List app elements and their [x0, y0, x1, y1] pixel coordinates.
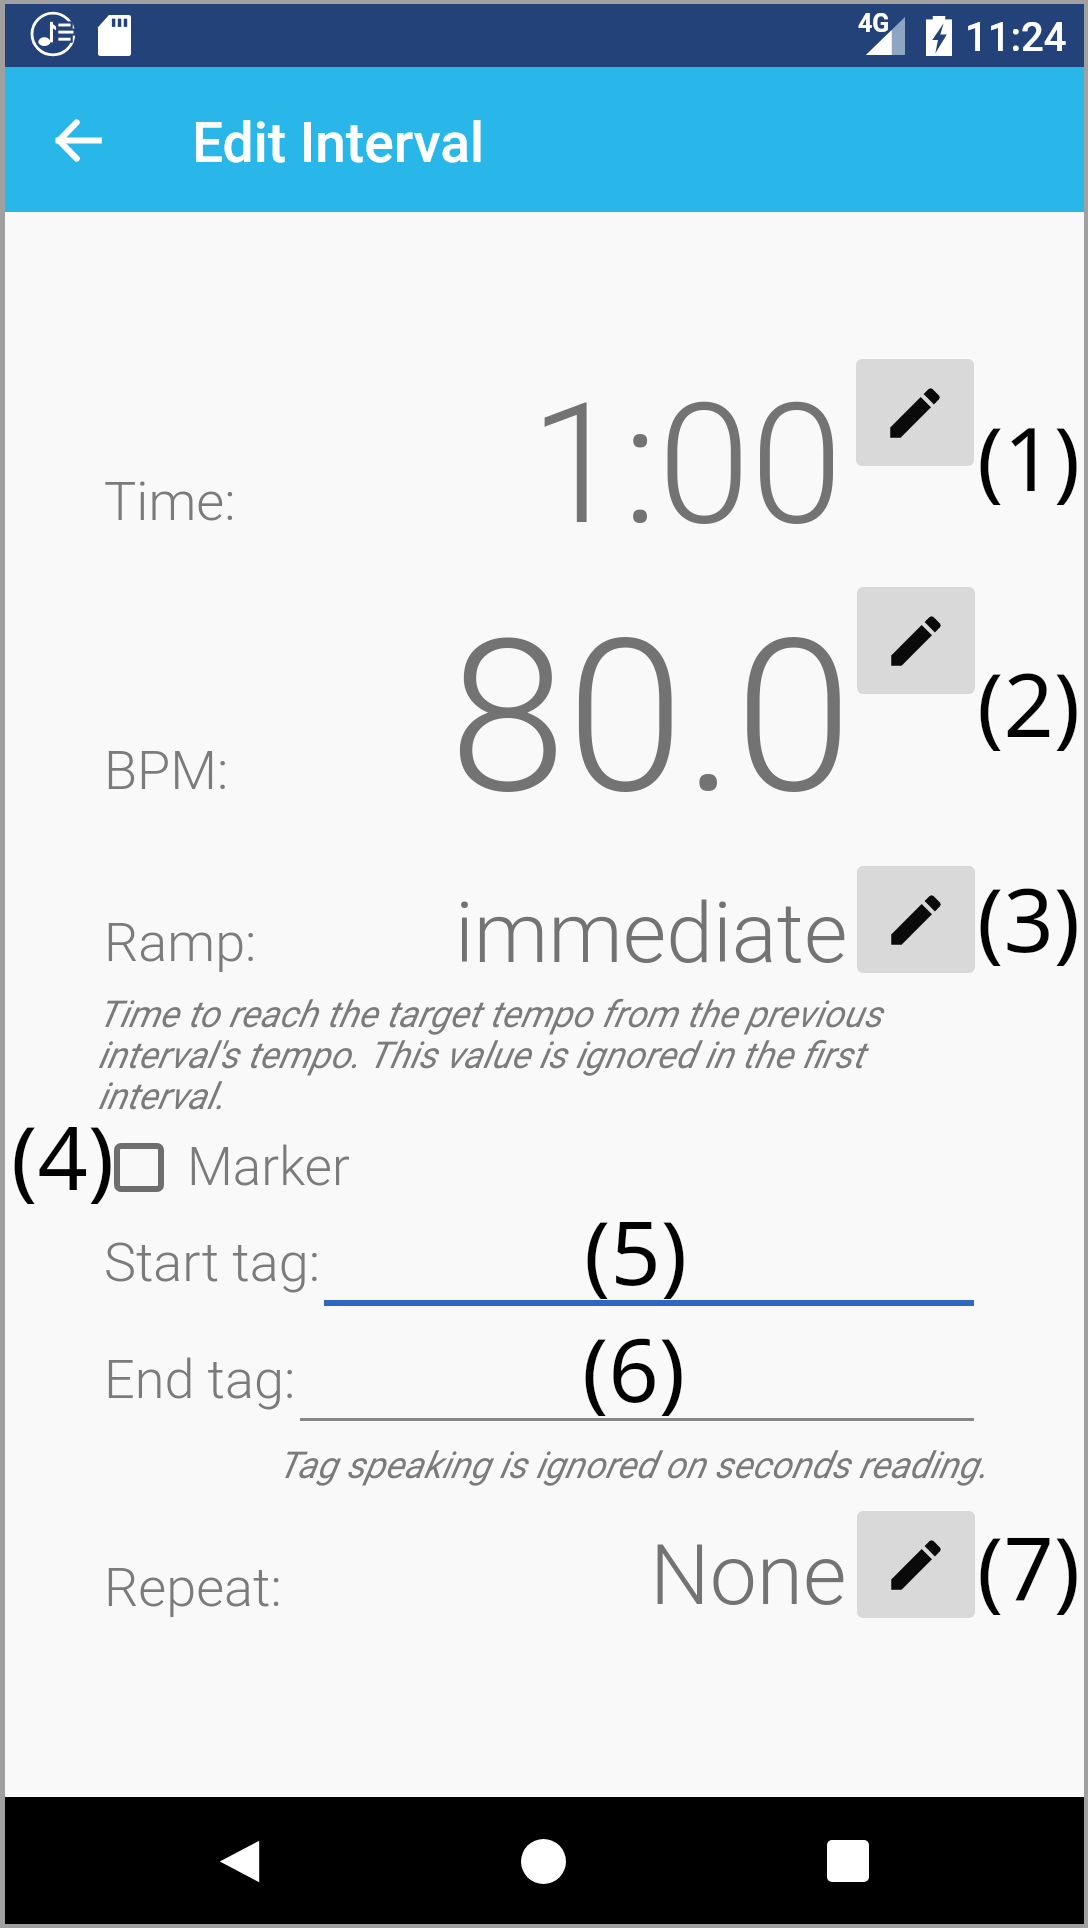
staticText: Tag speaking is ignored on seconds readi… [278, 1444, 988, 1487]
button[interactable]: Recent apps [800, 1813, 896, 1909]
staticText: immediate [455, 884, 848, 982]
staticText: (3) [977, 858, 1081, 978]
staticText: (4) [11, 1096, 115, 1216]
button[interactable]: Marker [114, 1136, 350, 1198]
staticText: BPM: [104, 739, 229, 802]
staticText: (5) [584, 1191, 688, 1311]
button[interactable]: Home [495, 1813, 591, 1909]
button[interactable]: Edit [857, 866, 975, 973]
button[interactable] [324, 1236, 974, 1306]
staticText: 4G [858, 9, 890, 38]
staticText: 80.0 [449, 593, 853, 841]
staticText: Time: [104, 470, 236, 533]
staticText: (1) [977, 397, 1081, 517]
staticText: Time to reach the target tempo from the … [98, 993, 898, 1118]
staticText: Repeat: [104, 1556, 282, 1619]
button[interactable]: Navigate up [34, 96, 122, 184]
staticText: End tag: [104, 1348, 296, 1411]
staticText: (2) [977, 643, 1081, 763]
staticText: Ramp: [104, 911, 257, 974]
button[interactable]: Edit [857, 587, 975, 694]
staticText: (6) [582, 1308, 686, 1428]
staticText: 11:24 [965, 14, 1067, 61]
staticText: Start tag: [104, 1231, 320, 1294]
button[interactable] [300, 1354, 974, 1418]
staticText: (7) [977, 1507, 1081, 1627]
staticText: Edit Interval [192, 111, 485, 175]
staticText: 1:00 [530, 367, 843, 563]
button[interactable]: Back [191, 1813, 287, 1909]
button[interactable]: Edit [857, 1511, 975, 1618]
staticText: Marker [187, 1136, 350, 1198]
staticText: None [650, 1526, 847, 1624]
button[interactable]: Edit [856, 359, 974, 466]
